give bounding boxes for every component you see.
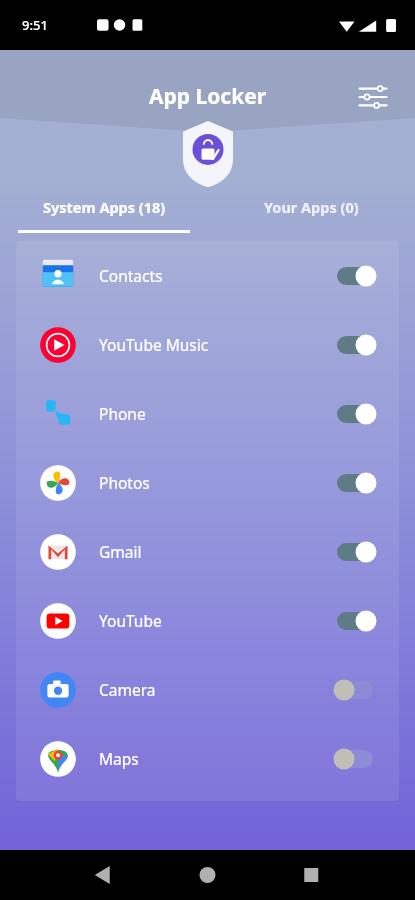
button[interactable]: Gmail	[16, 517, 399, 586]
button[interactable]	[329, 744, 381, 774]
staticText: Photos	[99, 472, 150, 493]
staticText: Phone	[99, 403, 146, 424]
staticText: Your Apps (0)	[264, 197, 359, 217]
button[interactable]: Contacts	[16, 241, 399, 310]
button[interactable]: YouTube	[16, 586, 399, 655]
staticText: System Apps (18)	[43, 197, 166, 217]
button[interactable]	[329, 330, 381, 360]
button[interactable]	[329, 468, 381, 498]
button[interactable]: Photos	[16, 448, 399, 517]
button[interactable]: Settings	[352, 76, 394, 118]
button[interactable]	[329, 399, 381, 429]
button[interactable]: Maps	[16, 724, 399, 793]
button[interactable]: YouTube Music	[16, 310, 399, 379]
staticText: YouTube Music	[99, 334, 209, 355]
button[interactable]	[329, 261, 381, 291]
button[interactable]	[329, 537, 381, 567]
staticText: Gmail	[99, 541, 142, 562]
button[interactable]	[329, 606, 381, 636]
button[interactable]	[329, 675, 381, 705]
button[interactable]: Your Apps (0)	[207, 190, 415, 240]
button[interactable]: Phone	[16, 379, 399, 448]
staticText: YouTube	[99, 610, 162, 631]
staticText: 9:51	[22, 16, 48, 34]
staticText: Camera	[99, 679, 156, 700]
staticText: Contacts	[99, 265, 163, 286]
staticText: Maps	[99, 748, 139, 769]
button[interactable]: System Apps (18)	[0, 190, 207, 240]
staticText: App Locker	[0, 82, 415, 111]
button[interactable]: Camera	[16, 655, 399, 724]
